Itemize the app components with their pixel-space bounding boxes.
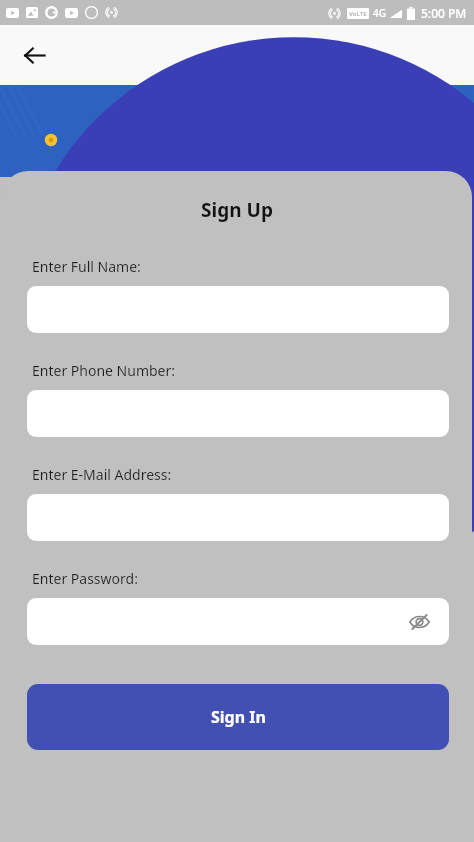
button[interactable]: Toggle password visibility xyxy=(404,607,434,637)
staticText: Enter Password: xyxy=(32,569,138,588)
button[interactable] xyxy=(27,390,449,437)
staticText: Sign In xyxy=(211,706,266,728)
staticText: Enter E-Mail Address: xyxy=(32,465,172,484)
button[interactable] xyxy=(27,286,449,333)
staticText: Sign Up xyxy=(2,197,472,223)
staticText: 4G xyxy=(373,6,386,20)
button[interactable]: Toggle password visibility xyxy=(27,598,449,645)
staticText: Enter Full Name: xyxy=(32,257,141,276)
button[interactable]: Sign In xyxy=(27,684,449,750)
staticText: Enter Phone Number: xyxy=(32,361,176,380)
staticText: 5:00 PM xyxy=(421,5,467,21)
button[interactable] xyxy=(27,494,449,541)
button[interactable]: Back xyxy=(12,33,56,77)
staticText: VoLTE xyxy=(349,10,367,18)
